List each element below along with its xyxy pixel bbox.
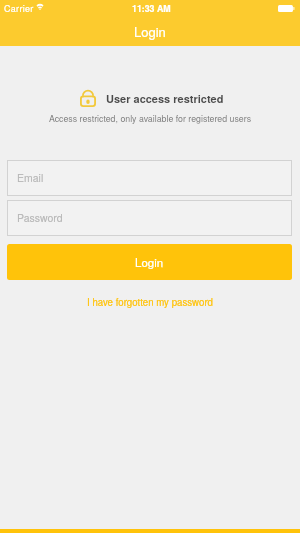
button[interactable]: Email: [8, 161, 291, 195]
staticText: Login: [135, 254, 164, 270]
staticText: Carrier: [4, 2, 34, 15]
button[interactable]: Login: [7, 244, 292, 280]
staticText: User access restricted: [106, 91, 224, 107]
button[interactable]: I have forgotten my password: [0, 295, 300, 309]
other: Battery full: [278, 5, 295, 12]
button[interactable]: Password: [8, 201, 291, 235]
staticText: Password: [17, 210, 63, 225]
staticText: Access restricted, only available for re…: [0, 112, 300, 125]
staticText: Email: [17, 170, 44, 185]
staticText: 11:33 AM: [132, 2, 171, 15]
other: Locked: [80, 89, 96, 107]
other: Wi-Fi signal: [36, 4, 44, 10]
staticText: Login: [134, 22, 166, 41]
staticText: I have forgotten my password: [87, 295, 214, 309]
